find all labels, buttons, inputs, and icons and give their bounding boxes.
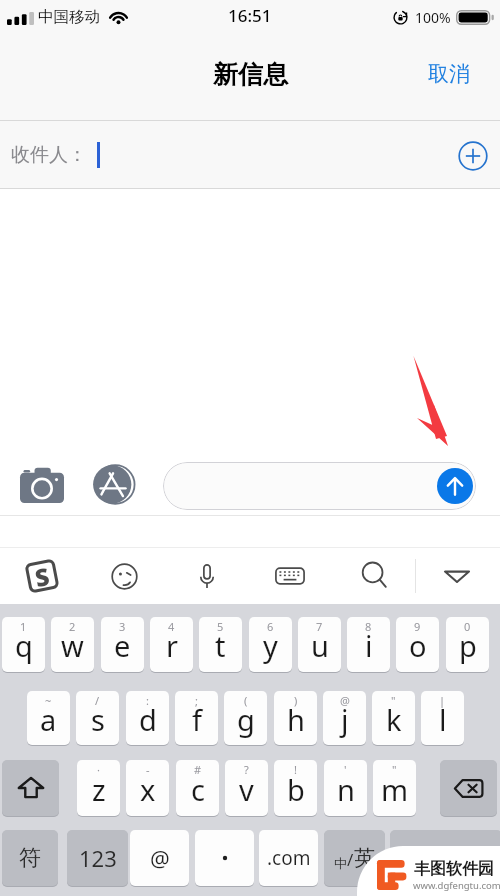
button[interactable]: ~	[27, 691, 70, 745]
button[interactable]: -	[126, 760, 169, 816]
staticText: /	[95, 693, 100, 708]
button[interactable]: Add contact	[458, 141, 488, 171]
button[interactable]: Camera	[20, 467, 64, 503]
staticText: g	[237, 700, 255, 739]
staticText: ·	[97, 762, 100, 777]
staticText: q	[15, 626, 33, 665]
staticText: !	[294, 762, 297, 777]
staticText: ~	[45, 693, 52, 708]
button[interactable]: .com	[259, 830, 318, 886]
button[interactable]: (	[224, 691, 267, 745]
button[interactable]: ·	[77, 760, 120, 816]
staticText: S	[32, 559, 52, 591]
staticText: |	[439, 693, 446, 708]
staticText: f	[192, 700, 202, 739]
staticText: 收件人：	[11, 143, 87, 167]
button[interactable]: 取消	[411, 51, 500, 97]
staticText: 换行	[422, 846, 462, 871]
button[interactable]: 0	[446, 617, 489, 672]
staticText: 7	[316, 619, 323, 634]
staticText: 6	[267, 619, 274, 634]
staticText: y	[263, 626, 278, 665]
button[interactable]: Return	[390, 830, 500, 886]
staticText: 123	[79, 843, 117, 873]
button[interactable]: Keyboard	[264, 548, 316, 604]
button[interactable]: @	[130, 830, 189, 886]
button[interactable]: Emoji	[98, 548, 150, 604]
staticText: w	[61, 626, 84, 665]
staticText: m	[381, 770, 409, 809]
staticText: ;	[195, 693, 198, 708]
button[interactable]: "	[373, 760, 416, 816]
button[interactable]: 中	[324, 830, 385, 886]
staticText: o	[409, 626, 427, 665]
staticText: "	[391, 693, 396, 708]
staticText: 8	[365, 619, 372, 634]
button[interactable]: Send	[437, 468, 473, 504]
staticText: u	[311, 626, 329, 665]
button[interactable]: ?	[225, 760, 268, 816]
button[interactable]: 4	[150, 617, 193, 672]
button[interactable]: '	[324, 760, 367, 816]
staticText: .com	[267, 845, 311, 871]
button[interactable]: Search	[349, 548, 401, 604]
staticText: 5	[217, 619, 224, 634]
button[interactable]: #	[176, 760, 219, 816]
button[interactable]: :	[126, 691, 169, 745]
button[interactable]: Backspace	[440, 760, 497, 816]
button[interactable]: |	[421, 691, 464, 745]
staticText: :	[146, 693, 149, 708]
staticText: r	[166, 626, 178, 665]
button[interactable]: Input method	[17, 548, 67, 604]
staticText: ?	[244, 762, 249, 777]
button[interactable]: )	[274, 691, 317, 745]
button[interactable]: Voice input	[181, 548, 233, 604]
staticText: 16:51	[228, 4, 272, 27]
staticText: 1	[20, 619, 27, 634]
staticText: 3	[119, 619, 126, 634]
staticText: e	[114, 626, 131, 665]
button[interactable]: !	[274, 760, 317, 816]
button[interactable]: 1	[2, 617, 45, 672]
staticText: 符	[19, 844, 41, 872]
staticText: @	[150, 843, 170, 873]
staticText: 取消	[428, 61, 470, 87]
staticText: p	[459, 626, 477, 665]
staticText: 新信息	[213, 59, 288, 90]
staticText: k	[386, 700, 402, 739]
button[interactable]: 123	[67, 830, 128, 886]
button[interactable]: 8	[347, 617, 390, 672]
button[interactable]: 3	[101, 617, 144, 672]
button[interactable]: Hide keyboard	[431, 548, 483, 604]
button[interactable]: App Store	[92, 463, 135, 506]
staticText: (	[244, 693, 248, 708]
staticText: i	[365, 626, 373, 665]
staticText: 2	[69, 619, 76, 634]
button[interactable]: ;	[175, 691, 218, 745]
staticText: '	[344, 762, 347, 777]
button[interactable]: Shift	[2, 760, 59, 816]
staticText: t	[215, 626, 226, 665]
button[interactable]: /	[76, 691, 119, 745]
staticText: 中	[334, 855, 347, 871]
button[interactable]: @	[323, 691, 366, 745]
staticText: n	[337, 770, 355, 809]
staticText: j	[341, 700, 349, 739]
button[interactable]	[163, 462, 476, 510]
button[interactable]: "	[372, 691, 415, 745]
staticText: #	[194, 762, 202, 777]
button[interactable]: 5	[199, 617, 242, 672]
button[interactable]: 2	[51, 617, 94, 672]
staticText: -	[146, 762, 150, 777]
staticText: z	[92, 770, 106, 809]
button[interactable]: 6	[249, 617, 292, 672]
staticText: x	[140, 770, 156, 809]
button[interactable]: 符	[2, 830, 58, 886]
staticText: h	[287, 700, 305, 739]
button[interactable]: 9	[396, 617, 439, 672]
staticText: www.dgfengtu.com	[413, 879, 500, 892]
button[interactable]: 7	[298, 617, 341, 672]
staticText: 9	[414, 619, 421, 634]
button[interactable]: Period	[195, 830, 254, 886]
staticText: l	[439, 700, 447, 739]
